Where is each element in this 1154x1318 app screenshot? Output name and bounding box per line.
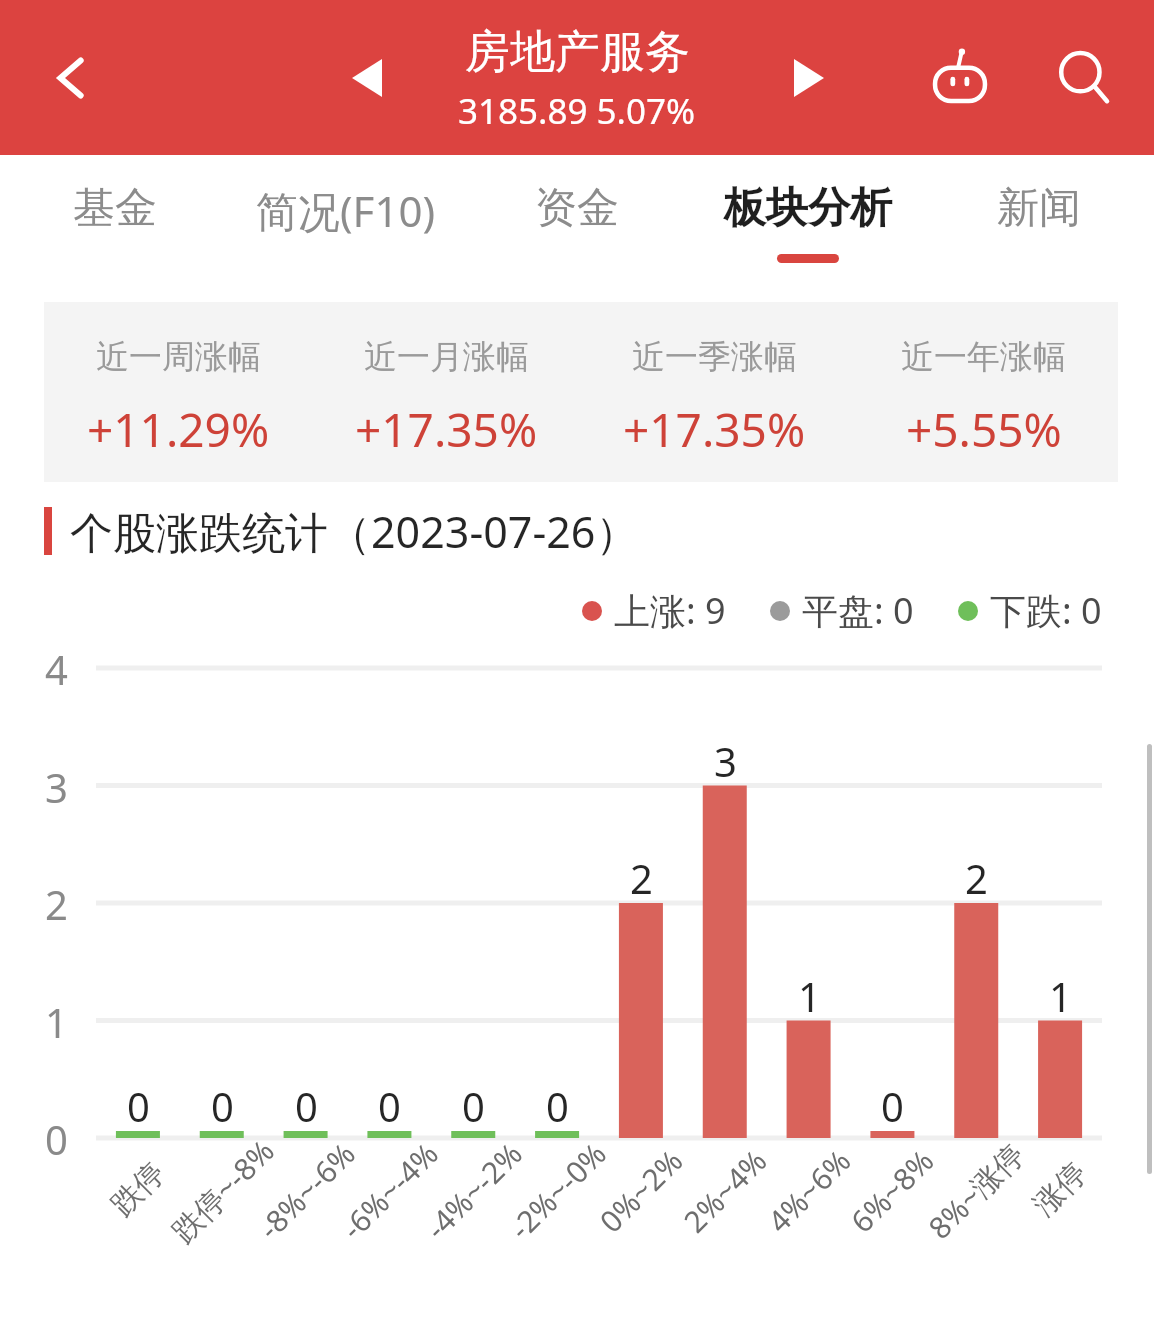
staticText: 3 [714,734,737,788]
staticText: 0 [127,1079,150,1133]
staticText: 0%~2% [590,1140,691,1241]
staticText: -6%~-4% [332,1133,447,1248]
staticText: 0 [211,1079,234,1133]
staticText: 近一周涨幅 [96,336,261,378]
button[interactable]: Search [1040,33,1130,123]
button[interactable]: 简况(F10) [230,155,461,302]
staticText: 6%~8% [841,1140,942,1241]
staticText: 近一月涨幅 [364,336,529,378]
staticText: 近一季涨幅 [632,336,797,378]
button[interactable]: 平盘: 0 [770,586,914,635]
button[interactable]: 资金 [461,155,692,302]
button[interactable]: 板块分析 [692,155,923,302]
staticText: 1 [45,995,68,1049]
staticText: 资金 [535,182,619,235]
staticText: 跌停~-8% [162,1130,283,1251]
staticText: 4 [45,642,68,696]
staticText: 0 [295,1079,318,1133]
staticText: 2 [965,851,988,905]
staticText: -8%~-6% [249,1133,364,1248]
staticText: 0 [546,1079,569,1133]
button[interactable]: 新闻 [923,155,1154,302]
staticText: -2%~-0% [500,1133,615,1248]
staticText: 0 [462,1079,485,1133]
staticText: 3185.89 5.07% [458,87,696,135]
staticText: 1 [798,969,821,1023]
staticText: 1 [1049,969,1072,1023]
staticText: 3 [45,760,68,814]
button[interactable]: 下跌: 0 [958,586,1102,635]
staticText: 8%~涨停 [919,1134,1033,1247]
button[interactable]: 近一年涨幅 [849,302,1118,482]
staticText: +5.55% [906,398,1062,461]
button[interactable]: 上涨: 9 [582,586,726,635]
staticText: 基金 [73,182,157,235]
staticText: 涨停 [1025,1154,1095,1224]
button[interactable]: 房地产服务 [458,24,696,135]
button[interactable]: 近一周涨幅 [44,302,312,482]
staticText: 4%~6% [758,1140,859,1241]
staticText: 2 [45,877,68,931]
button[interactable]: 基金 [0,155,230,302]
button[interactable]: 近一月涨幅 [312,302,580,482]
staticText: 上涨: 9 [614,586,726,635]
staticText: 下跌: 0 [990,586,1102,635]
staticText: 个股涨跌统计（2023-07-26） [70,502,639,561]
staticText: 0 [881,1079,904,1133]
button[interactable]: 近一季涨幅 [580,302,849,482]
button[interactable]: Previous sector [330,41,404,115]
button[interactable]: 个股涨跌统计（2023-07-26） [0,482,1154,580]
button[interactable]: Assistant [915,33,1005,123]
staticText: +17.35% [355,398,538,461]
staticText: 简况(F10) [256,182,436,239]
staticText: +17.35% [623,398,806,461]
staticText: 房地产服务 [465,24,690,81]
staticText: 0 [378,1079,401,1133]
staticText: 近一年涨幅 [901,336,1066,378]
button[interactable]: Next sector [772,41,846,115]
staticText: 平盘: 0 [802,586,914,635]
staticText: 跌停 [103,1154,173,1224]
staticText: 0 [45,1112,68,1166]
staticText: 2%~4% [674,1140,775,1241]
staticText: 新闻 [997,182,1081,235]
button[interactable]: Back [30,37,112,119]
staticText: +11.29% [87,398,270,461]
staticText: -4%~-2% [416,1133,531,1248]
staticText: 板块分析 [724,182,892,235]
staticText: 2 [630,851,653,905]
